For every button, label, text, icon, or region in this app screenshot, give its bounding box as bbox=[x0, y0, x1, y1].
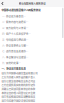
staticText: 用户个人信息保护条款 bbox=[6, 32, 30, 36]
staticText: 服务内容与资费标准 bbox=[6, 20, 27, 24]
staticText: 双方权利与义务说明 bbox=[6, 26, 27, 30]
staticText: 三、 bbox=[2, 26, 6, 30]
button[interactable]: 七、 bbox=[0, 48, 64, 54]
button[interactable]: 一、 bbox=[0, 13, 64, 19]
staticText: 五、 bbox=[2, 38, 6, 41]
staticText: 协议变更终止与解除 bbox=[6, 44, 27, 47]
button[interactable]: 八、 bbox=[0, 54, 64, 60]
staticText: 违约责任及处理办法 bbox=[6, 49, 27, 53]
staticText: 移动互联网接入服务协议 bbox=[19, 2, 45, 5]
button[interactable]: 九、 bbox=[0, 60, 64, 66]
staticText: 九、 bbox=[2, 61, 6, 65]
button[interactable]: 三、 bbox=[0, 25, 64, 31]
staticText: 并确认已阅读同意本协议的条款 bbox=[1, 87, 35, 91]
button[interactable]: 四、 bbox=[0, 31, 64, 37]
staticText: 甲方有权依国家规定调整服务项 bbox=[1, 95, 35, 99]
staticText: 四、 bbox=[2, 32, 6, 36]
staticText: 一、协议双方基本信息 bbox=[1, 66, 25, 70]
staticText: 甲方为中国移动通信集团有限公司 bbox=[1, 71, 37, 75]
staticText: 争议解决与法律适用 bbox=[6, 55, 27, 59]
staticText: 其他约定事项 bbox=[6, 61, 20, 65]
button[interactable]: 五、 bbox=[0, 37, 64, 42]
staticText: 二、 bbox=[2, 20, 6, 24]
staticText: 乙方为办理入网手续的客户本人 bbox=[1, 75, 35, 79]
staticText: 甲方已依法取得电信业务许可证 bbox=[1, 79, 35, 83]
staticText: 号码使用与停机规则 bbox=[6, 38, 27, 41]
button[interactable]: Back bbox=[0, 0, 5, 7]
staticText: 六、 bbox=[2, 44, 6, 47]
staticText: 中国移动通信集团客户入网服务协议 bbox=[1, 8, 40, 12]
staticText: 本协议自办理入网登记之日生效 bbox=[1, 91, 35, 95]
button[interactable]: 二、 bbox=[0, 19, 64, 25]
staticText: 乙方应提供真实有效的身份证件 bbox=[1, 83, 35, 87]
staticText: 一、 bbox=[2, 14, 6, 18]
staticText: 八、 bbox=[2, 55, 6, 59]
staticText: 双方均应遵守国家法律法规规定 bbox=[1, 99, 35, 102]
staticText: 协议双方基本信息 bbox=[6, 14, 25, 18]
staticText: 七、 bbox=[2, 49, 6, 53]
button[interactable]: 六、 bbox=[0, 42, 64, 48]
